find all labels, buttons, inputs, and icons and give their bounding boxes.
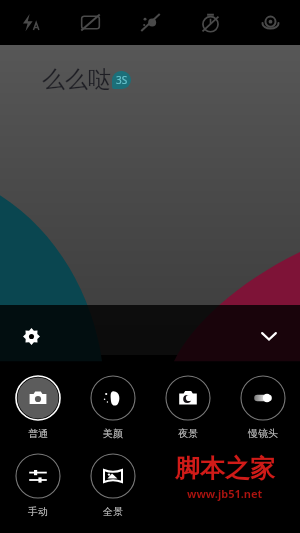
button[interactable]: 慢镜头 xyxy=(225,375,300,440)
staticText: 脚本之家 xyxy=(175,453,275,484)
button[interactable]: 美颜 xyxy=(75,375,150,440)
staticText: www.jb51.net xyxy=(187,486,263,501)
staticText: 么么哒 xyxy=(42,65,111,94)
button[interactable]: Flash auto xyxy=(0,0,60,45)
button[interactable]: HDR off xyxy=(60,0,120,45)
staticText: 普通 xyxy=(28,427,48,440)
button[interactable]: 全景 xyxy=(75,453,150,518)
staticText: 3S xyxy=(116,73,128,87)
staticText: 手动 xyxy=(28,505,48,518)
button[interactable]: Beauty off xyxy=(120,0,180,45)
staticText: 慢镜头 xyxy=(248,427,278,440)
button[interactable]: Settings xyxy=(10,315,52,357)
button[interactable]: Timer xyxy=(180,0,240,45)
staticText: 夜景 xyxy=(178,427,198,440)
button[interactable]: Collapse xyxy=(248,315,290,357)
staticText: 全景 xyxy=(103,505,123,518)
button[interactable]: 普通 xyxy=(0,375,75,440)
button[interactable]: 手动 xyxy=(0,453,75,518)
button[interactable]: Switch camera xyxy=(240,0,300,45)
button[interactable]: 夜景 xyxy=(150,375,225,440)
staticText: 美颜 xyxy=(103,427,123,440)
